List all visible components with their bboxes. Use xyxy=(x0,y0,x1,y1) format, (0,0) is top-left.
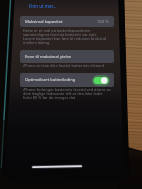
button[interactable]: Optimalisert batterilading xyxy=(93,76,109,85)
button[interactable]: Evne til maksimal ytelse xyxy=(20,50,114,63)
button[interactable]: Maksimal kapasitet xyxy=(20,16,114,27)
staticText: Maksimal kapasitet xyxy=(25,19,63,25)
button[interactable]: Finn ut mer… xyxy=(29,3,57,9)
staticText: Evne til maksimal ytelse xyxy=(25,54,72,60)
staticText: iPhone forlenger batteriets levetid ved … xyxy=(23,87,111,100)
staticText: 100 % xyxy=(97,19,109,25)
button[interactable]: Optimalisert batterilading xyxy=(20,73,114,87)
staticText: Optimalisert batterilading xyxy=(25,77,76,83)
staticText: iPhone-en kan ikke fastslå batteriets ti… xyxy=(23,63,105,68)
staticText: Dette er et mål på batterikapasiteten sa… xyxy=(23,28,110,45)
staticText: Finn ut mer… xyxy=(29,3,57,9)
